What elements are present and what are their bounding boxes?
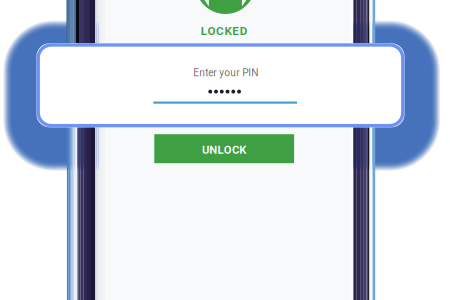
button[interactable]: UNLOCK [154,134,294,163]
staticText: UNLOCK [202,143,246,157]
staticText: LOCKED [201,24,248,38]
staticText: Enter your PIN [193,67,258,79]
